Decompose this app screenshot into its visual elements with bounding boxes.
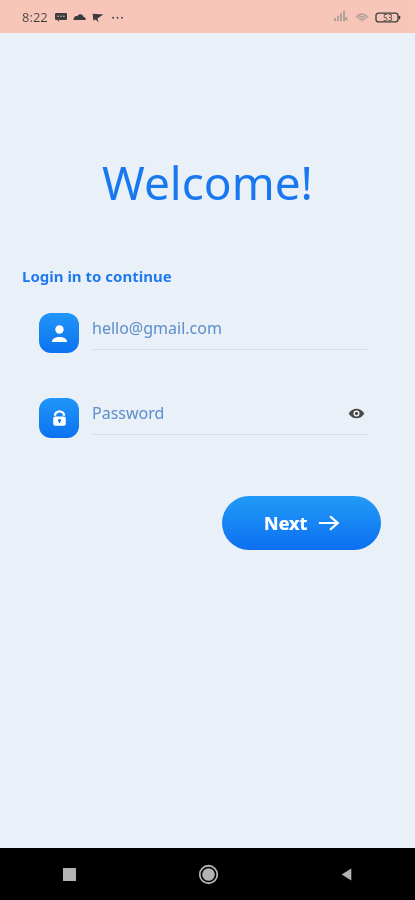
staticText: hello@gmail.com bbox=[92, 317, 367, 339]
staticText: Login in to continue bbox=[22, 266, 172, 286]
staticText: 8:22 bbox=[22, 8, 48, 26]
button[interactable]: Recents bbox=[0, 848, 139, 900]
staticText: Password bbox=[92, 402, 345, 424]
staticText: Welcome! bbox=[0, 151, 415, 214]
staticText: 53 bbox=[383, 12, 393, 24]
button[interactable]: Password bbox=[39, 398, 367, 438]
button[interactable]: Show password bbox=[345, 402, 367, 424]
button[interactable]: hello@gmail.com bbox=[39, 313, 367, 353]
button[interactable]: Home bbox=[139, 848, 277, 900]
button[interactable]: Next bbox=[222, 496, 381, 550]
staticText: Next bbox=[264, 511, 308, 536]
button[interactable]: Back bbox=[277, 848, 415, 900]
